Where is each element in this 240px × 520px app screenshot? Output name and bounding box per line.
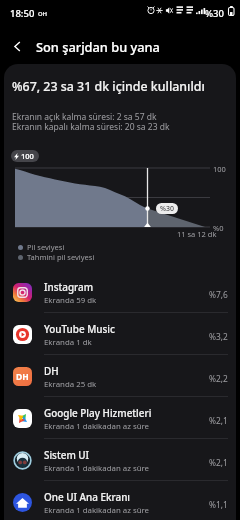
staticText: %2,1: [209, 415, 228, 426]
staticText: %2,1: [209, 457, 228, 468]
button[interactable]: Instagram: [0, 271, 240, 313]
staticText: Ekranda 59 dk: [44, 295, 97, 306]
staticText: Ekranda 1 dakikadan az süre: [44, 505, 150, 516]
staticText: Instagram: [44, 280, 94, 293]
button[interactable]: Geri: [0, 29, 34, 63]
staticText: 18:50: [10, 7, 35, 20]
staticText: %3,2: [209, 331, 228, 342]
staticText: 11 sa 12 dk: [177, 229, 217, 239]
button[interactable]: One UI Ana Ekranı: [0, 481, 240, 520]
staticText: Ekranda 1 dk: [44, 337, 92, 348]
button[interactable]: DH: [0, 355, 240, 397]
staticText: DH: [44, 364, 59, 377]
staticText: %1,1: [209, 499, 228, 510]
staticText: 100: [21, 151, 34, 161]
staticText: Ekranda 1 dakikadan az süre: [44, 463, 150, 474]
staticText: Pil seviyesi: [27, 242, 65, 252]
button[interactable]: Sistem UI: [0, 439, 240, 481]
staticText: Ekranda 25 dk: [44, 379, 97, 390]
staticText: %7,6: [209, 289, 228, 300]
staticText: One UI Ana Ekranı: [44, 490, 131, 503]
staticText: Ekranın kapalı kalma süresi: 20 sa 23 dk: [12, 121, 170, 133]
staticText: DH: [16, 371, 29, 383]
staticText: %0: [213, 223, 224, 233]
staticText: Ekranın açık kalma süresi: 2 sa 57 dk: [12, 111, 157, 123]
staticText: Google Play Hizmetleri: [44, 406, 152, 419]
staticText: Ekranda 1 dakikadan az süre: [44, 421, 150, 432]
staticText: Sistem UI: [44, 448, 90, 461]
staticText: Son şarjdan bu yana: [36, 38, 160, 55]
staticText: %2,2: [209, 373, 228, 384]
staticText: %67, 23 sa 31 dk içinde kullanıldı: [12, 78, 205, 95]
staticText: %30: [205, 7, 224, 20]
button[interactable]: Google Play Hizmetleri: [0, 397, 240, 439]
staticText: %30: [160, 204, 174, 214]
button[interactable]: YouTube Music: [0, 313, 240, 355]
staticText: ОН: [38, 10, 48, 18]
staticText: YouTube Music: [44, 322, 115, 335]
staticText: Tahmini pil seviyesi: [27, 252, 95, 262]
staticText: 100: [213, 164, 226, 174]
